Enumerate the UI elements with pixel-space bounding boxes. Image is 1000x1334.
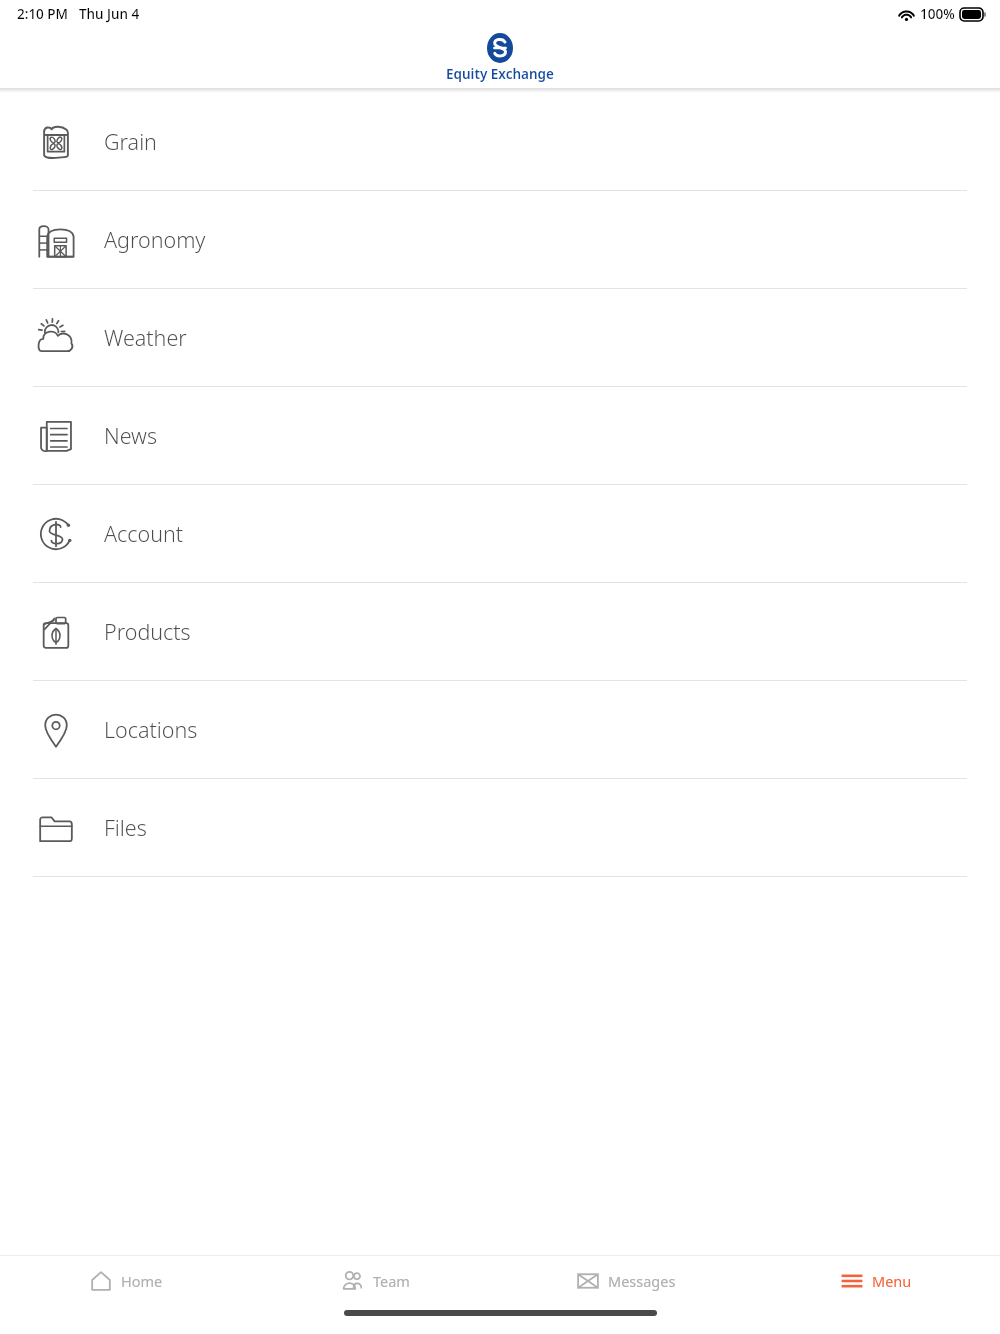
staticText: Grain [104, 127, 157, 156]
staticText: Agronomy [104, 225, 206, 254]
staticText: Weather [104, 323, 187, 352]
staticText: Home [121, 1271, 163, 1291]
button[interactable]: Weather [0, 289, 1000, 387]
staticText: News [104, 421, 157, 450]
button[interactable]: Menu [750, 1256, 1000, 1306]
staticText: Messages [608, 1271, 676, 1291]
staticText: Files [104, 813, 147, 842]
button[interactable]: Grain [0, 93, 1000, 191]
staticText: 2:10 PM [17, 5, 68, 23]
button[interactable]: Products [0, 583, 1000, 681]
staticText: Thu Jun 4 [79, 5, 140, 23]
button[interactable]: Agronomy [0, 191, 1000, 289]
button[interactable]: Account [0, 485, 1000, 583]
button[interactable]: News [0, 387, 1000, 485]
button[interactable]: Team [250, 1256, 500, 1306]
staticText: Menu [872, 1271, 912, 1291]
staticText: Locations [104, 715, 198, 744]
button[interactable]: Messages [500, 1256, 750, 1306]
button[interactable]: Locations [0, 681, 1000, 779]
button[interactable]: Files [0, 779, 1000, 877]
staticText: 100% [920, 5, 955, 23]
staticText: Account [104, 519, 184, 548]
staticText: Team [373, 1271, 410, 1291]
button[interactable]: Home [0, 1256, 250, 1306]
staticText: Equity Exchange [446, 65, 554, 83]
staticText: Products [104, 617, 191, 646]
